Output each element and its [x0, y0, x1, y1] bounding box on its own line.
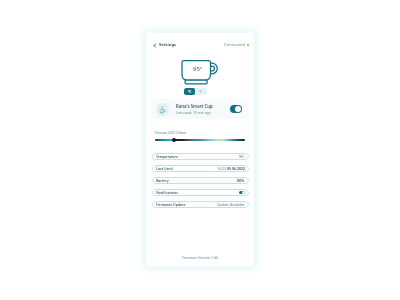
staticText: 05.06.2022 [227, 166, 245, 171]
staticText: Choose LED Colour [155, 130, 187, 135]
button[interactable]: °C [184, 88, 195, 95]
staticText: Settings [159, 42, 177, 48]
staticText: Connected [224, 42, 246, 48]
button[interactable]: Battery [152, 177, 249, 184]
staticText: 95° [193, 65, 203, 73]
staticText: Firmware Version 1.44 [146, 255, 254, 260]
button[interactable]: Connected [224, 42, 249, 48]
staticText: 14:23 [217, 166, 227, 171]
button[interactable]: Rana's Smart Cup [152, 99, 248, 119]
button[interactable]: Back to Settings [153, 42, 177, 48]
button[interactable]: Toggle [230, 105, 242, 113]
button[interactable]: Notifications [152, 189, 249, 196]
staticText: °C [188, 90, 192, 94]
button[interactable]: LED colour [172, 138, 176, 142]
staticText: °F [199, 90, 203, 94]
button[interactable]: °F [195, 88, 207, 95]
staticText: Temperature [156, 154, 179, 159]
staticText: Update Available [217, 202, 245, 207]
staticText: Firmware Update [156, 202, 186, 207]
staticText: Battery [156, 178, 169, 183]
button[interactable]: Firmware Update [152, 201, 249, 208]
staticText: 80% [237, 178, 245, 183]
staticText: Rana's Smart Cup [176, 103, 213, 109]
staticText: 95° [239, 154, 245, 159]
button[interactable]: Last Used [152, 165, 249, 172]
button[interactable]: Toggle [239, 191, 245, 194]
button[interactable]: Temperature [152, 153, 249, 160]
staticText: Notifications [156, 190, 178, 195]
staticText: Last used: 10 min ago [176, 110, 211, 115]
staticText: Last Used [156, 166, 173, 171]
